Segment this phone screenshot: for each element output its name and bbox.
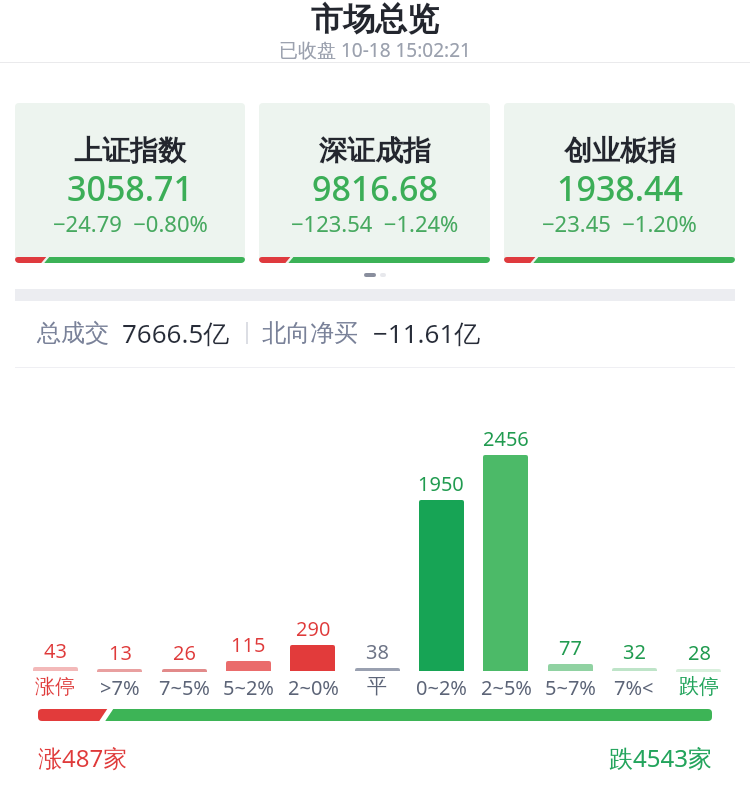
staticText: 3058.71 <box>67 165 193 211</box>
button[interactable]: 跌停 <box>667 674 731 699</box>
staticText: 市场总览 <box>311 0 439 39</box>
button[interactable]: 平 <box>345 674 409 699</box>
staticText: −123.54 −1.24% <box>291 208 459 238</box>
button[interactable]: 5~7% <box>538 674 602 701</box>
staticText: −24.79 −0.80% <box>53 208 208 238</box>
staticText: 2456 <box>483 425 529 452</box>
staticText: 上证指数 <box>74 133 186 168</box>
staticText: 32 <box>623 638 646 665</box>
staticText: >7% <box>100 674 140 701</box>
staticText: 2~0% <box>288 674 339 701</box>
staticText: 115 <box>231 631 266 658</box>
staticText: 77 <box>559 634 582 661</box>
staticText: 2~5% <box>481 674 532 701</box>
staticText: 涨停 <box>35 674 75 699</box>
staticText: 已收盘 10-18 15:02:21 <box>279 37 471 63</box>
staticText: 创业板指 <box>564 133 676 168</box>
staticText: 北向净买 <box>262 318 358 348</box>
staticText: 7~5% <box>159 674 210 701</box>
staticText: 13 <box>109 639 132 666</box>
staticText: 26 <box>173 639 196 666</box>
button[interactable]: 7%< <box>602 674 666 701</box>
button[interactable]: >7% <box>88 674 152 701</box>
staticText: −23.45 −1.20% <box>542 208 697 238</box>
staticText: 跌停 <box>679 674 719 699</box>
button[interactable]: 0~2% <box>409 674 473 701</box>
staticText: −11.61亿 <box>373 315 481 351</box>
button[interactable]: 7~5% <box>152 674 216 701</box>
staticText: 9816.68 <box>312 165 438 211</box>
button[interactable]: 2~0% <box>281 674 345 701</box>
staticText: 7%< <box>614 674 654 701</box>
button[interactable]: 上证指数 <box>15 103 245 263</box>
staticText: 28 <box>688 639 711 666</box>
button[interactable]: 创业板指 <box>504 103 735 263</box>
button[interactable]: 2~5% <box>474 674 538 701</box>
button[interactable]: 深证成指 <box>259 103 490 263</box>
staticText: 1938.44 <box>557 165 683 211</box>
staticText: 43 <box>44 637 67 664</box>
staticText: 跌4543家 <box>609 741 712 774</box>
staticText: 38 <box>366 638 389 665</box>
staticText: 290 <box>296 615 331 642</box>
staticText: 总成交 <box>37 318 109 348</box>
staticText: 0~2% <box>416 674 467 701</box>
staticText: 深证成指 <box>319 133 431 168</box>
staticText: 涨487家 <box>38 741 128 774</box>
staticText: 5~2% <box>223 674 274 701</box>
button[interactable]: 涨停 <box>23 674 87 699</box>
staticText: 5~7% <box>545 674 596 701</box>
button[interactable]: 总成交 <box>37 315 481 351</box>
staticText: 1950 <box>418 470 464 497</box>
button[interactable]: 5~2% <box>216 674 280 701</box>
staticText: 7666.5亿 <box>122 315 230 351</box>
staticText: 平 <box>367 674 387 699</box>
